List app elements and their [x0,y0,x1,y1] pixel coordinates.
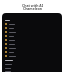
button[interactable] [2,18,62,22]
button[interactable] [2,50,62,54]
button[interactable] [2,62,62,66]
button[interactable] [2,34,62,38]
button[interactable] [2,46,62,50]
button[interactable] [2,54,62,58]
button[interactable] [2,26,62,30]
button[interactable] [2,70,62,72]
button[interactable] [2,42,62,46]
staticText: Chat with AI Chameleon [22,3,43,11]
button[interactable] [2,22,62,26]
button[interactable] [2,30,62,34]
button[interactable] [2,58,62,62]
button[interactable] [2,38,62,42]
button[interactable] [2,66,62,70]
